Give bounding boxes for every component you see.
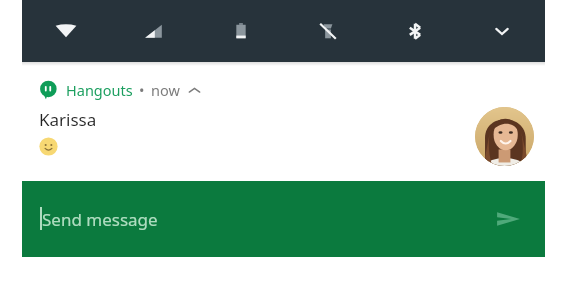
button[interactable]: Flashlight off [284,0,371,62]
button[interactable]: Expand quick settings [458,0,545,62]
button[interactable]: Mobile signal [110,0,197,62]
button[interactable]: Bluetooth [371,0,458,62]
button[interactable]: Send message [22,181,545,257]
staticText: • [139,80,145,100]
button[interactable]: Battery [197,0,284,62]
button[interactable]: Karissa profile photo [475,107,534,166]
staticText: Send message [42,208,158,231]
staticText: Hangouts [66,80,133,100]
button[interactable]: Send [491,202,525,236]
staticText: Karissa [39,108,97,131]
staticText: now [151,80,180,100]
button[interactable]: Wi-Fi [22,0,110,62]
button[interactable]: Hangouts [39,80,201,100]
